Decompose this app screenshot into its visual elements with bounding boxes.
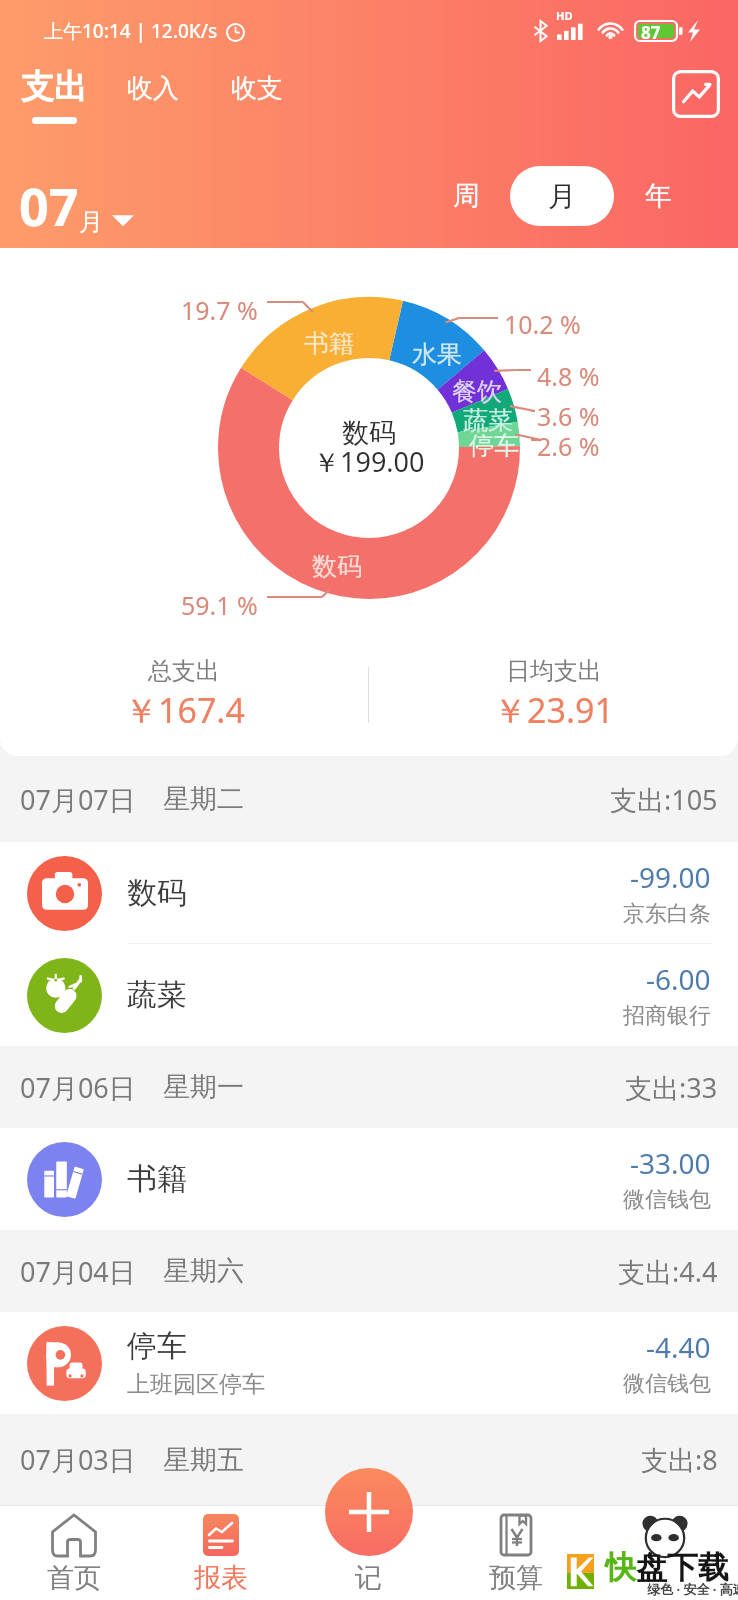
staticText: 年 (645, 179, 672, 213)
staticText: 报表 (194, 1561, 248, 1595)
staticText: 支出 (21, 66, 87, 108)
staticText: 3.6 % (537, 399, 600, 433)
button[interactable]: 书籍 (0, 1128, 738, 1230)
button[interactable]: 统计图表 (672, 70, 720, 118)
staticText: 支出:4.4 (618, 1253, 718, 1290)
staticText: 水果 (412, 339, 462, 370)
staticText: 蔬菜 (127, 976, 187, 1014)
staticText: 书籍 (127, 1160, 187, 1198)
staticText: ￥167.4 (124, 687, 245, 733)
button[interactable]: 支出 (21, 66, 87, 124)
staticText: 87 (641, 21, 661, 44)
button[interactable]: 蔬菜 (0, 944, 738, 1046)
staticText: 月 (79, 207, 103, 237)
staticText: 4.8 % (537, 359, 600, 393)
staticText: 星期六 (163, 1254, 244, 1288)
staticText: -99.00 (630, 858, 711, 896)
staticText: 餐饮 (452, 376, 502, 407)
button[interactable]: 记 (294, 1505, 442, 1600)
button[interactable]: 停车 (0, 1312, 738, 1414)
staticText: 10.2 % (504, 307, 581, 341)
staticText: 支出:33 (625, 1069, 718, 1106)
staticText: 数码 (312, 551, 362, 582)
staticText: 绿色 · 安全 · 高速 (647, 1580, 738, 1598)
staticText: -6.00 (646, 960, 711, 998)
staticText: 07 (19, 170, 79, 241)
staticText: 招商银行 (623, 1002, 711, 1030)
staticText: 京东白条 (623, 900, 711, 928)
staticText: 首页 (47, 1561, 101, 1595)
button[interactable]: 07 (19, 170, 134, 241)
staticText: 收支 (231, 72, 283, 105)
staticText: ￥23.91 (493, 687, 614, 733)
staticText: -4.40 (646, 1328, 711, 1366)
staticText: 19.7 % (181, 293, 258, 327)
button[interactable]: 预算 (442, 1505, 590, 1600)
staticText: 停车 (469, 430, 519, 461)
staticText: 上午10:14 | 12.0K/s (44, 18, 218, 44)
staticText: 总支出 (148, 656, 220, 686)
staticText: 07月04日 (20, 1253, 136, 1290)
staticText: 日均支出 (506, 656, 602, 686)
staticText: 数码 (342, 416, 396, 450)
staticText: 微信钱包 (623, 1186, 711, 1214)
button[interactable]: 年 (614, 166, 702, 226)
staticText: 上班园区停车 (127, 1370, 265, 1399)
staticText: 07月07日 (20, 781, 136, 818)
staticText: 月 (548, 179, 576, 214)
staticText: 快 (605, 1548, 636, 1587)
staticText: 停车 (127, 1327, 187, 1365)
staticText: 星期二 (163, 782, 244, 816)
button[interactable]: 收入 (127, 72, 179, 105)
staticText: 2.6 % (537, 429, 600, 463)
button[interactable]: 数码 (0, 842, 738, 944)
staticText: 数码 (127, 874, 187, 912)
button[interactable]: 收支 (231, 72, 283, 105)
staticText: 59.1 % (181, 588, 258, 622)
staticText: 蔬菜 (463, 405, 513, 436)
button[interactable]: 周 (422, 166, 510, 226)
button[interactable]: 月 (510, 166, 614, 226)
staticText: 支出:105 (610, 781, 718, 818)
staticText: 收入 (127, 72, 179, 105)
staticText: ￥199.00 (313, 443, 425, 480)
staticText: 星期一 (163, 1070, 244, 1104)
button[interactable]: 报表 (147, 1505, 294, 1600)
button[interactable]: 首页 (0, 1505, 147, 1600)
staticText: 周 (453, 179, 480, 213)
staticText: 预算 (489, 1561, 543, 1595)
staticText: 07月03日 (20, 1441, 136, 1478)
staticText: 07月06日 (20, 1069, 136, 1106)
staticText: 星期五 (163, 1443, 244, 1477)
staticText: 微信钱包 (623, 1370, 711, 1398)
staticText: 书籍 (304, 328, 354, 359)
staticText: 支出:8 (641, 1441, 718, 1478)
staticText: HD (556, 8, 573, 23)
staticText: -33.00 (630, 1144, 711, 1182)
staticText: 记 (355, 1561, 382, 1595)
staticText: 盘下载 (636, 1548, 729, 1587)
button[interactable]: 记一笔 (325, 1468, 413, 1556)
